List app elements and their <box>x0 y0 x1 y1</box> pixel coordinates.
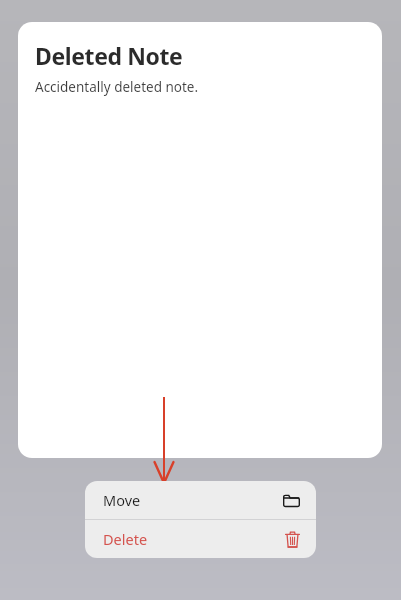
button[interactable]: Delete <box>85 520 316 558</box>
other: Move to folder <box>283 493 300 508</box>
staticText: Deleted Note <box>35 40 183 71</box>
staticText: Move <box>103 490 141 510</box>
button[interactable]: Deleted Note <box>18 22 382 458</box>
other: Delete <box>285 531 300 548</box>
staticText: Delete <box>103 529 148 549</box>
button[interactable]: Move <box>85 481 316 519</box>
staticText: Accidentally deleted note. <box>35 78 199 96</box>
